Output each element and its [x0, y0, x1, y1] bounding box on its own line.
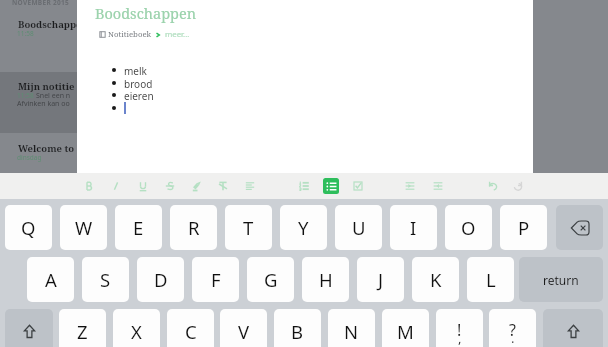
staticText: Boodschappen [18, 18, 88, 31]
staticText: R [188, 215, 200, 240]
button[interactable]: C [167, 309, 214, 347]
button[interactable]: Italic [104, 174, 128, 198]
button[interactable]: A [27, 257, 74, 302]
staticText: O [461, 215, 476, 240]
staticText: NOVEMBER 2015 [12, 0, 70, 7]
staticText: Notitieboek [108, 29, 152, 40]
button[interactable]: Underline [131, 174, 155, 198]
staticText: J [378, 267, 384, 292]
staticText: return [543, 272, 579, 288]
button[interactable]: Boodschappen [0, 6, 77, 72]
button[interactable]: X [113, 309, 160, 347]
staticText: D [154, 267, 168, 292]
button[interactable]: ! [436, 309, 483, 347]
button[interactable]: Welcome to [0, 133, 77, 173]
button[interactable]: Shift [543, 309, 603, 347]
button[interactable]: G [247, 257, 294, 302]
staticText: Q [21, 215, 36, 240]
staticText: W [75, 215, 93, 240]
staticText: C [185, 319, 197, 344]
button[interactable]: return [519, 257, 603, 302]
staticText: G [264, 267, 278, 292]
button[interactable]: Clear formatting [211, 174, 235, 198]
staticText: . [511, 329, 515, 347]
button[interactable]: S [82, 257, 129, 302]
staticText: V [238, 319, 250, 344]
button[interactable]: N [328, 309, 375, 347]
button[interactable]: W [60, 205, 107, 250]
button[interactable]: Y [280, 205, 327, 250]
staticText: Welcome to [18, 142, 77, 155]
staticText: melk [124, 64, 147, 78]
button[interactable]: Backspace [556, 205, 603, 250]
button[interactable]: T [225, 205, 272, 250]
staticText: 11:58 [17, 91, 34, 100]
staticText: B [291, 319, 304, 344]
staticText: ? [509, 319, 516, 341]
button[interactable]: P [500, 205, 547, 250]
staticText: T [243, 215, 254, 240]
button[interactable]: V [220, 309, 267, 347]
staticText: K [430, 267, 442, 292]
button[interactable]: Strikethrough [158, 174, 182, 198]
button[interactable]: J [357, 257, 404, 302]
button[interactable]: H [302, 257, 349, 302]
button[interactable]: R [170, 205, 217, 250]
button[interactable]: Numbered list [292, 174, 316, 198]
button[interactable]: M [382, 309, 429, 347]
staticText: I [410, 215, 417, 240]
button[interactable]: Bold [77, 174, 101, 198]
button[interactable]: Align [238, 174, 262, 198]
button[interactable]: B [274, 309, 321, 347]
staticText: Mijn notitie [18, 80, 75, 93]
button[interactable]: Decrease indent [426, 174, 450, 198]
button[interactable]: K [412, 257, 459, 302]
button[interactable]: Undo [481, 174, 505, 198]
staticText: A [45, 267, 57, 292]
button[interactable]: Q [5, 205, 52, 250]
button[interactable]: E [115, 205, 162, 250]
staticText: Boodschappen [95, 3, 197, 23]
staticText: Afvinken kan oo [17, 99, 70, 109]
staticText: meer... [165, 29, 190, 40]
staticText: H [319, 267, 333, 292]
staticText: P [518, 215, 530, 240]
staticText: dinsdag [17, 153, 42, 162]
button[interactable]: L [467, 257, 514, 302]
button[interactable]: D [137, 257, 184, 302]
staticText: E [133, 215, 144, 240]
staticText: Snel een n [36, 91, 71, 101]
button[interactable]: Z [59, 309, 106, 347]
staticText: brood [124, 77, 153, 91]
staticText: S [100, 267, 111, 292]
button[interactable]: F [192, 257, 239, 302]
button[interactable]: Redo [506, 174, 530, 198]
staticText: 11:58 [17, 29, 34, 38]
button[interactable]: O [445, 205, 492, 250]
button[interactable]: ? [489, 309, 536, 347]
button[interactable]: U [335, 205, 382, 250]
staticText: N [344, 319, 359, 344]
staticText: eieren [124, 89, 154, 103]
staticText: U [352, 215, 366, 240]
button[interactable]: Checklist [346, 174, 370, 198]
button[interactable]: Highlight [185, 174, 209, 198]
staticText: , [458, 329, 462, 347]
staticText: Y [298, 215, 309, 240]
staticText: M [397, 319, 414, 344]
button[interactable]: Shift [5, 309, 53, 347]
staticText: F [211, 267, 221, 292]
button[interactable]: Increase indent [398, 174, 422, 198]
button[interactable]: Mijn notitie [0, 72, 77, 133]
staticText: ! [457, 319, 462, 341]
staticText: X [131, 319, 142, 344]
button[interactable]: I [390, 205, 437, 250]
staticText: Z [77, 319, 88, 344]
button[interactable]: Bulleted list [319, 174, 343, 198]
staticText: L [486, 267, 496, 292]
